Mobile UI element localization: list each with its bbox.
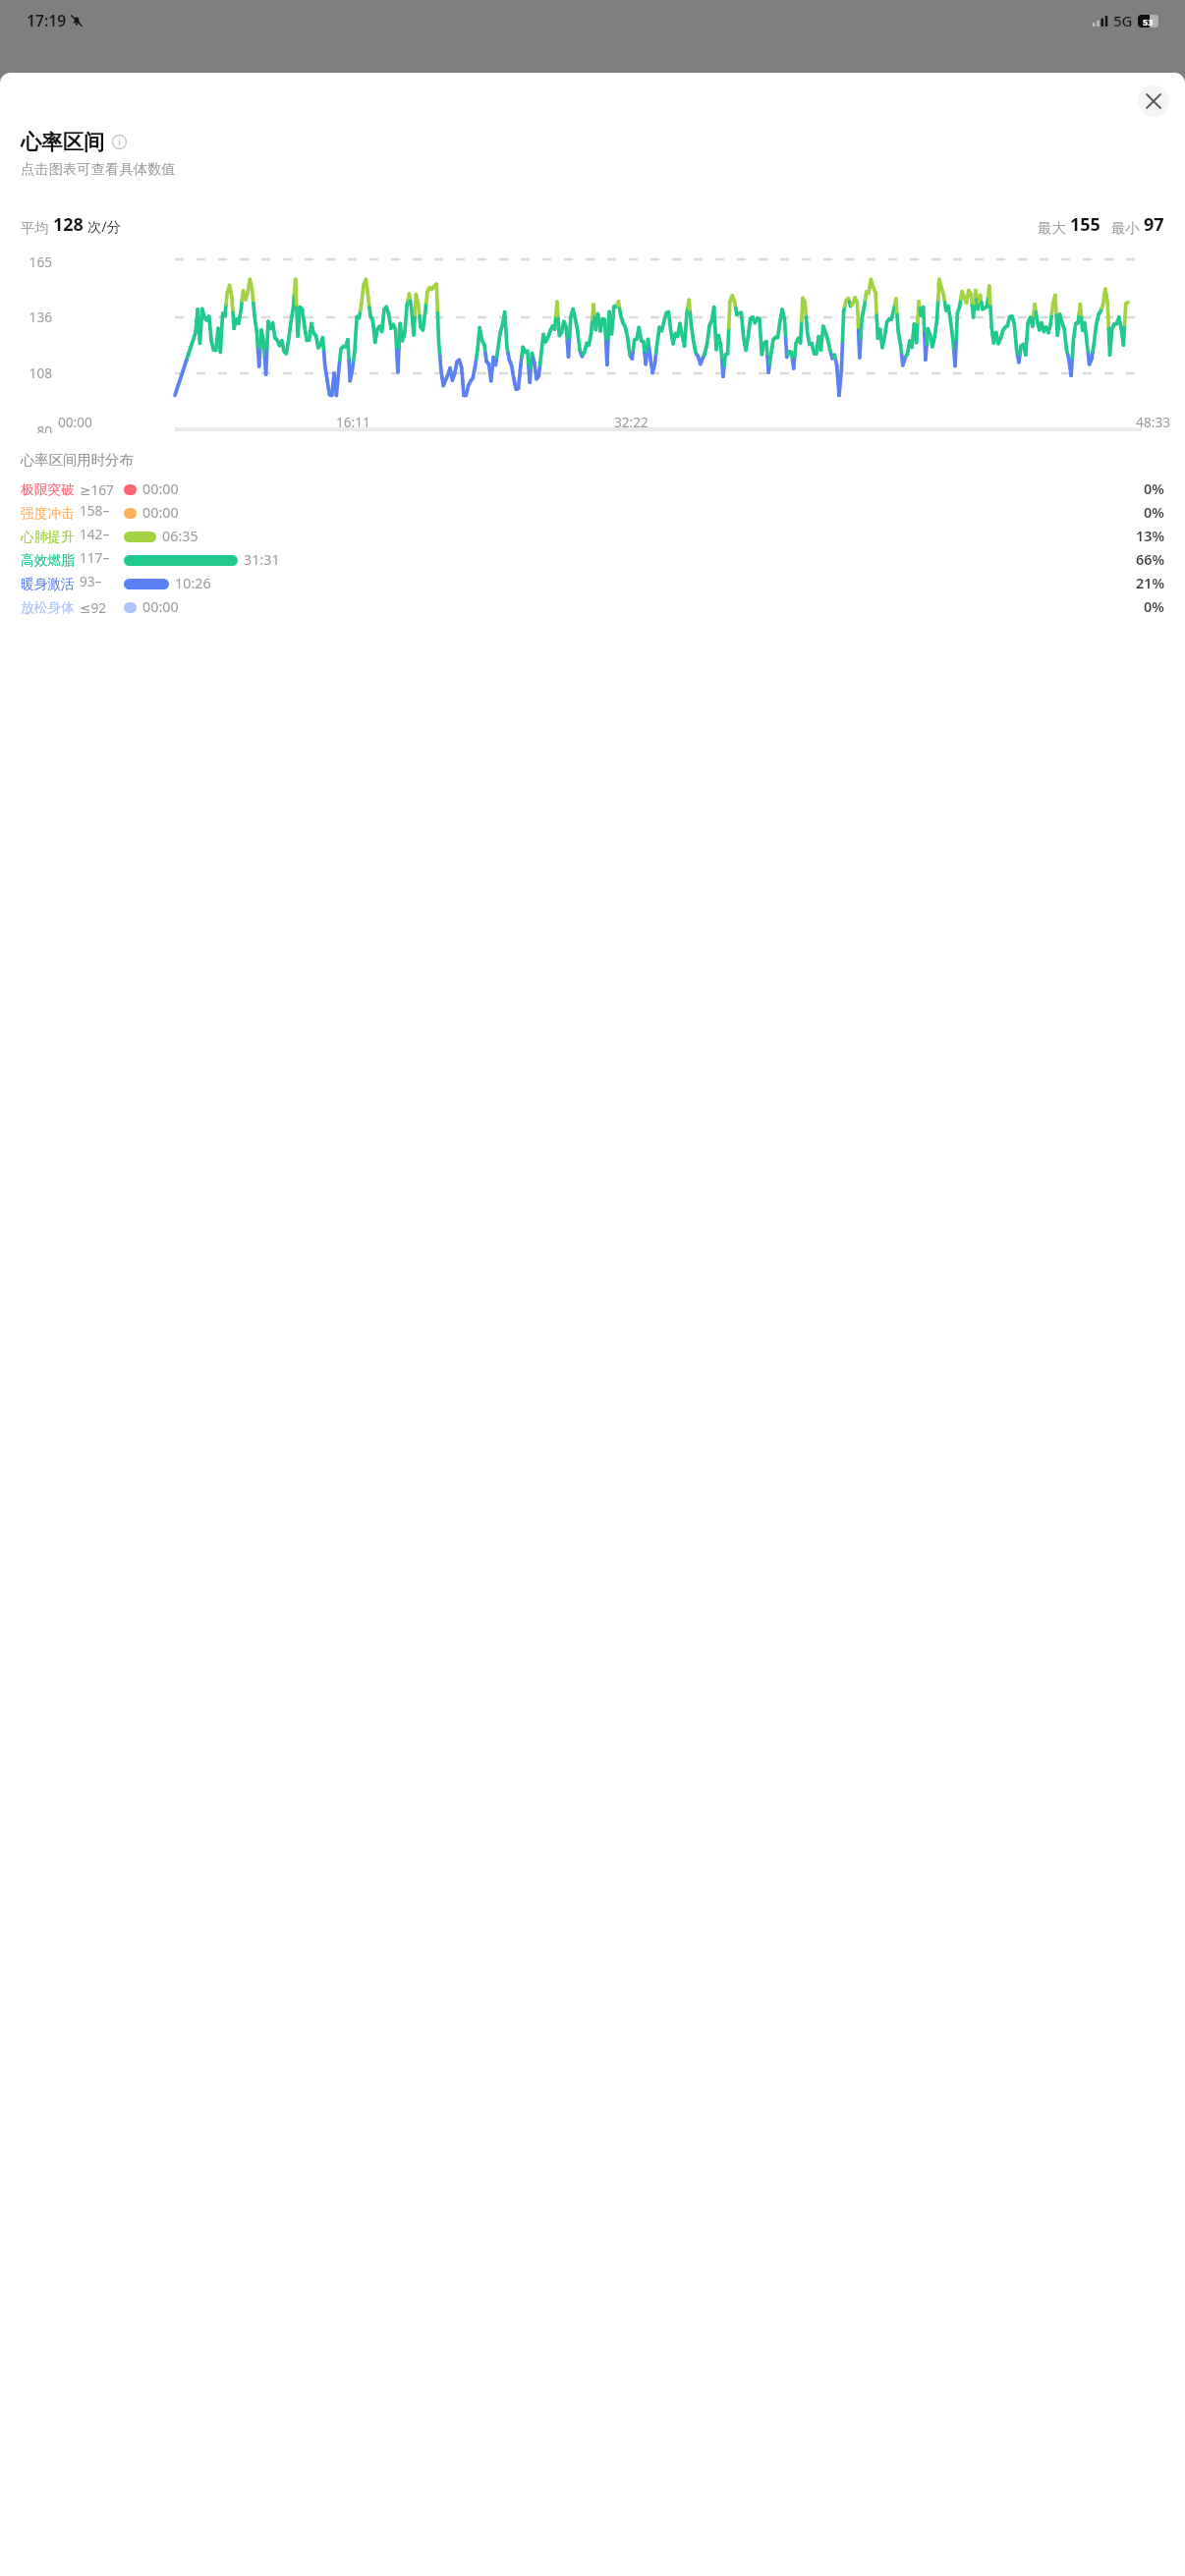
staticText: 66% [1136,550,1164,570]
staticText: 97 [1144,212,1164,237]
staticText: 10:26 [175,574,211,593]
staticText: ≥167 [80,480,114,499]
staticText: 平均 [21,219,49,237]
staticText: 53 [1143,16,1154,28]
staticText: 117–141 [80,548,124,572]
staticText: 00:00 [142,503,179,523]
staticText: 放松身体 [21,599,75,616]
staticText: 128 [53,212,84,237]
button[interactable]: 极限突破 [0,477,1185,501]
staticText: 00:00 [58,413,336,431]
staticText: 17:19 [27,10,67,30]
staticText: 强度冲击 [21,505,75,522]
staticText: 心率区间 [21,129,105,155]
staticText: 高效燃脂 [21,552,75,569]
button[interactable]: 高效燃脂 [0,548,1185,572]
staticText: 暖身激活 [21,576,75,592]
button[interactable] [0,250,1185,433]
staticText: 142–157 [80,525,124,548]
staticText: 108 [13,364,52,382]
button[interactable]: 放松身体 [0,595,1185,619]
staticText: 21% [1136,574,1164,593]
staticText: 最小 [1111,219,1140,237]
staticText: 最大 [1038,219,1066,237]
staticText: 80 [13,421,52,433]
staticText: 165 [13,252,52,271]
staticText: 5G [1113,11,1133,30]
staticText: ≤92 [80,598,107,617]
staticText: 0% [1144,597,1164,617]
staticText: 32:22 [614,413,892,431]
staticText: 00:00 [142,597,179,617]
button[interactable]: 关闭 [1138,85,1169,117]
staticText: 次/分 [87,217,121,237]
button[interactable]: 强度冲击 [0,501,1185,525]
staticText: 48:33 [892,413,1170,431]
staticText: 136 [13,308,52,326]
staticText: 心率区间用时分布 [21,451,134,469]
staticText: 13% [1136,527,1164,546]
staticText: 06:35 [162,527,198,546]
staticText: 158–166 [80,501,124,525]
staticText: 0% [1144,503,1164,523]
staticText: 心肺提升 [21,529,75,545]
staticText: 155 [1070,212,1100,237]
staticText: 16:11 [336,413,614,431]
staticText: 93–116 [80,572,124,595]
button[interactable]: 心肺提升 [0,525,1185,548]
button[interactable]: 说明 [111,134,128,150]
button[interactable]: 暖身激活 [0,572,1185,595]
staticText: 极限突破 [21,481,75,498]
staticText: 点击图表可查看具体数值 [21,160,176,178]
staticText: 00:00 [142,479,179,499]
staticText: 0% [1144,479,1164,499]
staticText: 31:31 [244,550,280,570]
